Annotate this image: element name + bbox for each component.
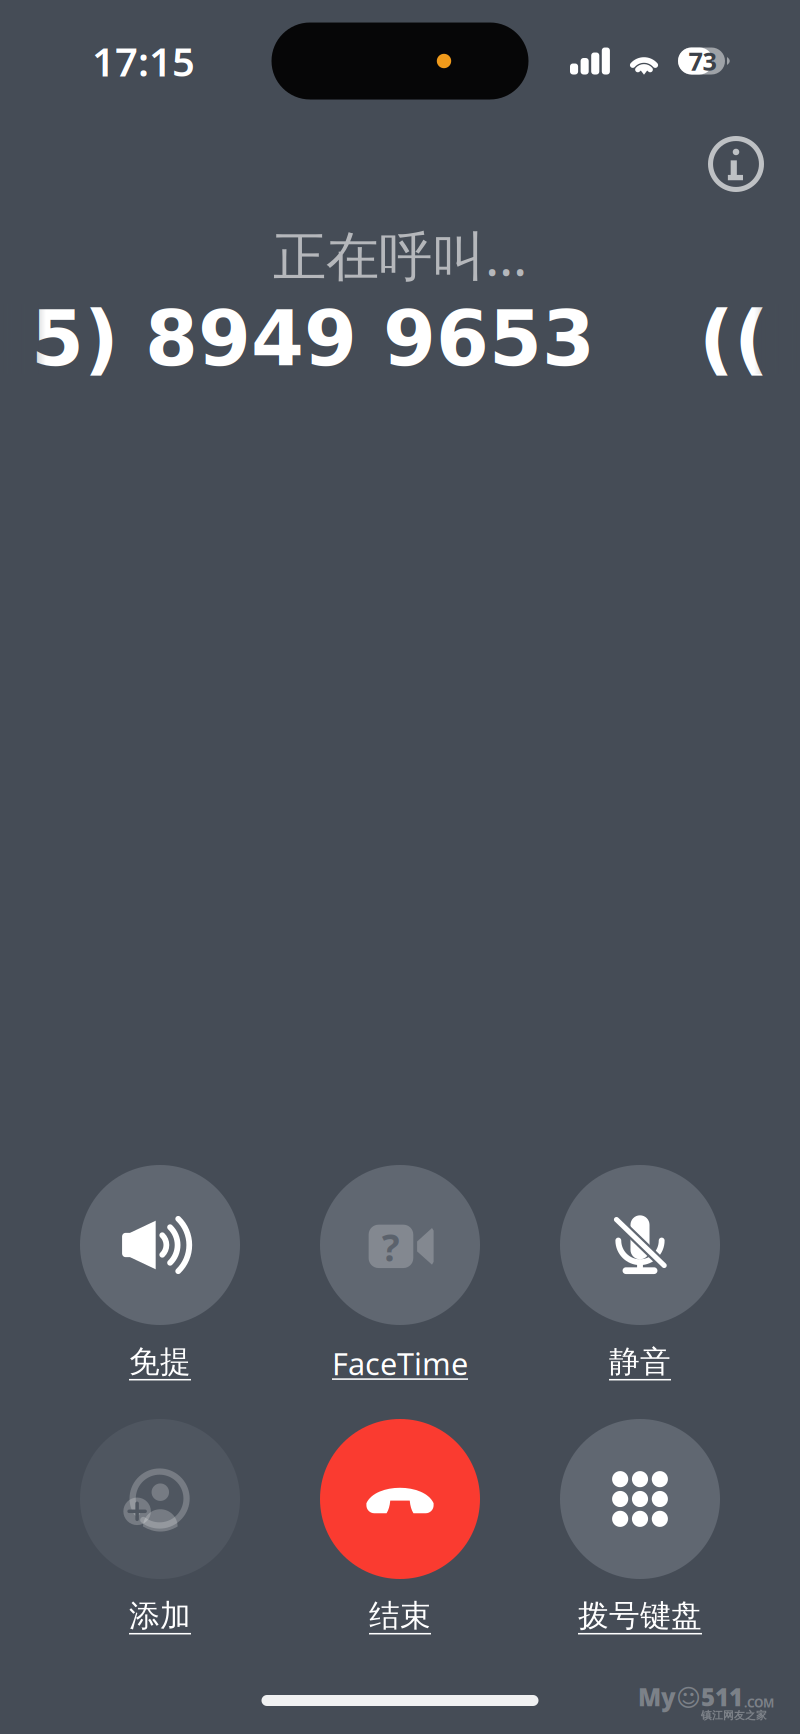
- button[interactable]: Call information: [692, 120, 780, 208]
- staticText: .COM: [744, 1695, 774, 1711]
- staticText: ?: [382, 1222, 400, 1272]
- staticText: 镇江网友之家: [701, 1709, 767, 1722]
- staticText: 17:15: [92, 34, 195, 87]
- button[interactable]: 静音: [560, 1165, 720, 1383]
- staticText: My☺511: [638, 1681, 743, 1713]
- button[interactable]: 添加: [80, 1419, 240, 1637]
- button[interactable]: 结束: [320, 1419, 480, 1637]
- staticText: 正在呼叫...: [273, 220, 527, 290]
- button[interactable]: 免提: [80, 1165, 240, 1383]
- staticText: FaceTime: [332, 1343, 468, 1384]
- button[interactable]: ?: [320, 1165, 480, 1383]
- staticText: 静音: [609, 1343, 671, 1381]
- staticText: 添加: [129, 1597, 191, 1635]
- staticText: 73: [688, 44, 716, 78]
- staticText: 免提: [129, 1343, 191, 1381]
- staticText: 结束: [369, 1597, 431, 1635]
- staticText: 拨号键盘: [578, 1597, 702, 1635]
- staticText: 5) 8949 9653 ((: [31, 295, 769, 383]
- button[interactable]: 拨号键盘: [560, 1419, 720, 1637]
